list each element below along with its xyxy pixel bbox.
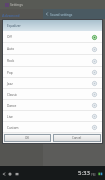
button[interactable]: Auto — [3, 43, 102, 55]
button[interactable]: Live — [3, 111, 102, 122]
staticText: Jazz — [7, 82, 13, 86]
staticText: Rock — [7, 59, 15, 63]
button[interactable]: Recent apps — [13, 170, 20, 177]
button[interactable]: Home — [6, 170, 13, 177]
button[interactable]: Cancel — [54, 135, 100, 141]
staticText: Classic — [7, 93, 18, 97]
staticText: Dance — [7, 104, 17, 108]
button[interactable]: Rock — [3, 55, 102, 67]
button[interactable]: Off — [3, 31, 102, 43]
staticText: Live — [7, 115, 13, 119]
staticText: OK — [25, 136, 30, 140]
staticText: Off — [7, 35, 12, 39]
button[interactable]: Dance — [3, 100, 102, 111]
staticText: Cancel — [72, 136, 82, 140]
staticText: Pop — [7, 71, 13, 75]
staticText: 5:33 — [78, 169, 90, 177]
staticText: Settings — [10, 2, 23, 7]
button[interactable]: Pop — [3, 67, 102, 78]
staticText: Sound settings — [50, 13, 73, 17]
button[interactable]: Custom — [3, 122, 102, 133]
staticText: Auto — [7, 47, 15, 51]
button[interactable]: OK — [5, 135, 50, 141]
button[interactable]: Jazz — [3, 78, 102, 89]
staticText: PM — [91, 173, 96, 177]
staticText: Custom — [7, 126, 19, 130]
button[interactable]: Back — [0, 170, 7, 177]
button[interactable]: Classic — [3, 89, 102, 100]
staticText: Equalizer — [7, 24, 21, 28]
staticText: Advanced — [2, 13, 20, 18]
